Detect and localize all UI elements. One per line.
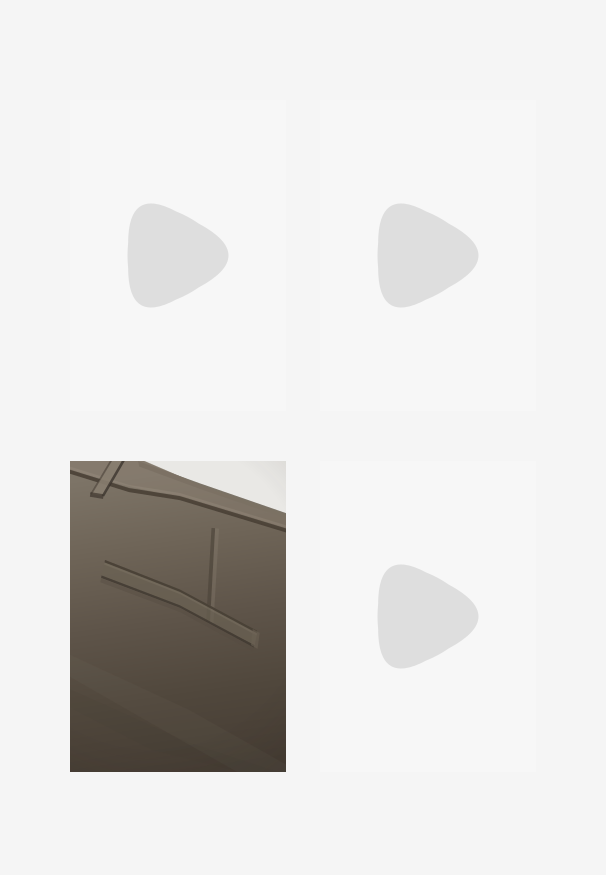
button[interactable]: Olive chino trousers bbox=[70, 461, 286, 772]
button[interactable]: Product image loading bbox=[320, 461, 536, 772]
button[interactable]: Product image loading bbox=[70, 100, 286, 411]
button[interactable]: Product image loading bbox=[320, 100, 536, 411]
